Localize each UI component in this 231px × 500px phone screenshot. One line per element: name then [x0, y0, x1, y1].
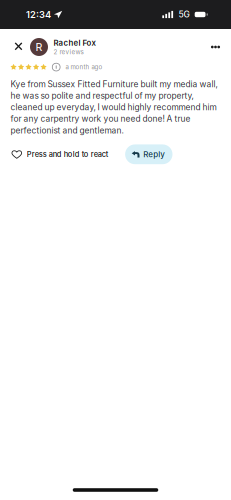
staticText: 2 reviews — [53, 48, 83, 56]
button[interactable]: Press and hold to react — [0, 145, 109, 164]
staticText: Press and hold to react — [27, 150, 109, 159]
button[interactable]: More options — [200, 34, 231, 60]
button[interactable]: Close — [0, 34, 30, 60]
staticText: Rachel Fox — [53, 38, 95, 48]
staticText: a month ago — [65, 63, 102, 71]
staticText: Reply — [143, 149, 165, 159]
staticText: Kye from Sussex Fitted Furniture built m… — [10, 79, 217, 135]
staticText: 5G — [178, 9, 189, 20]
staticText: R — [35, 40, 42, 53]
staticText: 12:34 — [26, 9, 51, 20]
button[interactable]: Reply — [125, 144, 172, 164]
